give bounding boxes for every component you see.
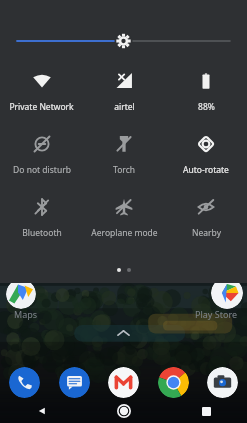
staticText: Bluetooth	[22, 227, 62, 239]
staticText: Torch	[113, 164, 135, 176]
button[interactable]: Camera	[207, 367, 238, 398]
button[interactable]: Do not disturb	[0, 129, 83, 178]
button[interactable]: Back	[0, 399, 83, 423]
button[interactable]: Messages	[59, 367, 90, 398]
button[interactable]: Bluetooth	[0, 192, 83, 241]
button[interactable]: Nearby	[165, 192, 247, 241]
button[interactable]: airtel	[83, 66, 165, 115]
button[interactable]: Chrome	[158, 367, 189, 398]
staticText: Nearby	[192, 227, 221, 239]
button[interactable]: Maps	[6, 279, 36, 309]
button[interactable]: Private Network	[0, 66, 83, 115]
button[interactable]: Home	[83, 399, 165, 423]
staticText: 88%	[198, 101, 215, 113]
staticText: Maps	[14, 308, 38, 320]
staticText: Auto-rotate	[183, 164, 229, 176]
staticText: Aeroplane mode	[91, 227, 158, 239]
button[interactable]: Play Store	[211, 277, 243, 309]
button[interactable]: Recents	[165, 399, 247, 423]
button[interactable]: Gmail	[108, 367, 139, 398]
button[interactable]: Aeroplane mode	[83, 192, 165, 241]
button[interactable]: Auto-rotate	[165, 129, 247, 178]
button[interactable]	[0, 30, 247, 52]
staticText: Play Store	[195, 308, 237, 320]
button[interactable]: Phone	[9, 367, 40, 398]
staticText: Private Network	[9, 101, 74, 113]
staticText: Do not disturb	[13, 164, 71, 176]
button[interactable]: 88%	[165, 66, 247, 115]
staticText: airtel	[114, 101, 135, 113]
button[interactable]: Torch	[83, 129, 165, 178]
